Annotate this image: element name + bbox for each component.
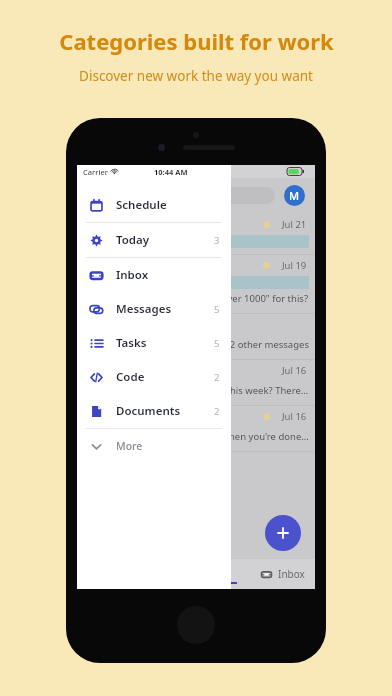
staticText: Code	[116, 369, 145, 385]
button[interactable]: Inbox	[261, 559, 305, 589]
staticText: Categories built for work	[59, 26, 334, 56]
staticText: Today	[116, 232, 150, 248]
staticText: 5	[214, 337, 220, 350]
button[interactable]: More	[77, 429, 231, 463]
staticText: …when you're done…	[214, 430, 309, 443]
staticText: 3	[214, 234, 220, 247]
staticText: 10:44 AM	[154, 167, 188, 177]
button[interactable]: 3	[199, 559, 247, 589]
staticText: 2	[214, 371, 220, 384]
button[interactable]: Compose	[265, 515, 301, 551]
button[interactable]: Today	[77, 223, 231, 257]
staticText: …d 2 other messages	[214, 338, 309, 351]
staticText: Messages	[116, 301, 172, 317]
staticText: 2	[214, 405, 220, 418]
staticText: Discover new work the way you want	[79, 67, 313, 85]
staticText: Documents	[116, 403, 181, 419]
staticText: Jul 16	[282, 410, 307, 423]
staticText: 5	[214, 303, 220, 316]
button[interactable]: Schedule	[77, 188, 231, 222]
button[interactable]: Documents	[77, 394, 231, 428]
staticText: …this week? There…	[219, 384, 309, 397]
staticText: M	[289, 188, 300, 203]
button[interactable]: Tasks	[77, 326, 231, 360]
staticText: Jul 21	[282, 218, 307, 231]
staticText: Inbox	[116, 267, 149, 283]
button[interactable]: Messages	[77, 292, 231, 326]
staticText: Tasks	[116, 335, 147, 351]
staticText: Jul 19	[282, 259, 307, 272]
staticText: Inbox	[278, 567, 305, 581]
button[interactable]: Code	[77, 360, 231, 394]
staticText: Jul 16	[282, 364, 307, 377]
staticText: Carrier	[83, 167, 108, 177]
staticText: More	[116, 439, 143, 453]
staticText: Schedule	[116, 197, 167, 213]
staticText: …ver 1000" for this?	[220, 292, 309, 305]
button[interactable]: Inbox	[77, 258, 231, 292]
